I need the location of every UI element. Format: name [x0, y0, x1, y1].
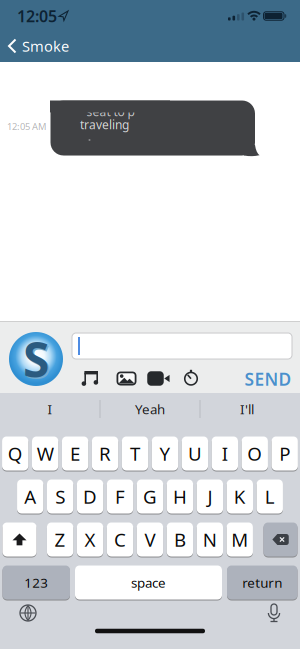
button[interactable]: E — [62, 436, 88, 471]
staticText: S — [23, 327, 49, 391]
button[interactable]: return — [227, 565, 297, 600]
staticText: F — [115, 484, 125, 509]
staticText: J — [207, 484, 212, 509]
button[interactable]: T — [122, 436, 148, 471]
staticText: L — [265, 484, 275, 509]
staticText: X — [84, 527, 95, 552]
staticText: O — [247, 441, 262, 466]
staticText: SEND — [244, 367, 291, 390]
staticText: 123 — [24, 574, 48, 591]
button[interactable]: K — [227, 479, 253, 514]
staticText: V — [144, 527, 155, 552]
staticText: I'll — [240, 400, 254, 418]
staticText: seat to p — [86, 103, 134, 119]
button[interactable]: L — [257, 479, 283, 514]
button[interactable]: G — [137, 479, 163, 514]
staticText: 12:05 AM — [7, 120, 46, 133]
staticText: space — [131, 574, 166, 591]
staticText: K — [234, 484, 246, 509]
staticText: B — [174, 527, 186, 552]
staticText: S — [24, 329, 50, 392]
staticText: N — [203, 527, 217, 552]
button[interactable]: Y — [152, 436, 178, 471]
staticText: S — [55, 484, 65, 509]
staticText: G — [143, 484, 157, 509]
staticText: H — [173, 484, 187, 509]
button[interactable]: Next keyboard — [15, 600, 41, 626]
button[interactable]: Back — [3, 32, 71, 60]
staticText: Y — [159, 441, 170, 466]
button[interactable]: N — [197, 522, 223, 557]
staticText: T — [130, 441, 140, 466]
button[interactable]: Timer — [179, 365, 203, 389]
button[interactable]: SEND — [242, 367, 294, 391]
staticText: Smoke — [22, 36, 69, 56]
button[interactable]: I'll — [202, 395, 292, 423]
button[interactable]: F — [107, 479, 133, 514]
staticText: A — [24, 484, 36, 509]
staticText: 12:05 — [17, 5, 57, 27]
button[interactable]: Delete — [263, 522, 297, 557]
button[interactable]: R — [92, 436, 118, 471]
button[interactable]: P — [272, 436, 298, 471]
button[interactable]: Dictate — [261, 600, 287, 626]
staticText: D — [83, 484, 97, 509]
button[interactable]: V — [137, 522, 163, 557]
button[interactable]: Video — [145, 366, 172, 390]
button[interactable]: S — [47, 479, 73, 514]
staticText: R — [99, 441, 111, 466]
staticText: M — [231, 527, 248, 552]
staticText: P — [279, 441, 290, 466]
button[interactable]: B — [167, 522, 193, 557]
button[interactable]: X — [77, 522, 103, 557]
button[interactable]: I — [5, 395, 95, 423]
button[interactable]: C — [107, 522, 133, 557]
button[interactable]: U — [182, 436, 208, 471]
button[interactable]: 123 — [2, 565, 70, 600]
button[interactable]: A — [17, 479, 43, 514]
staticText: Yeah — [135, 400, 165, 418]
button[interactable]: O — [242, 436, 268, 471]
button[interactable]: Q — [2, 436, 28, 471]
staticText: E — [70, 441, 80, 466]
staticText: U — [188, 441, 202, 466]
staticText: return — [242, 574, 282, 591]
staticText: I — [222, 441, 228, 466]
staticText: Q — [8, 441, 23, 466]
button[interactable]: W — [32, 436, 58, 471]
button[interactable]: Message — [72, 333, 292, 359]
button[interactable]: D — [77, 479, 103, 514]
button[interactable]: M — [227, 522, 253, 557]
staticText: traveling — [80, 116, 129, 132]
staticText: I — [47, 400, 52, 418]
button[interactable]: I — [212, 436, 238, 471]
staticText: Z — [55, 527, 66, 552]
button[interactable]: Photos — [113, 366, 139, 390]
button[interactable]: Music — [77, 366, 102, 390]
staticText: C — [114, 527, 126, 552]
button[interactable]: Shift — [2, 522, 36, 557]
button[interactable]: J — [197, 479, 223, 514]
button[interactable]: H — [167, 479, 193, 514]
staticText: W — [37, 441, 54, 466]
button[interactable]: Yeah — [105, 395, 195, 423]
button[interactable]: space — [75, 565, 222, 600]
button[interactable]: Z — [47, 522, 73, 557]
